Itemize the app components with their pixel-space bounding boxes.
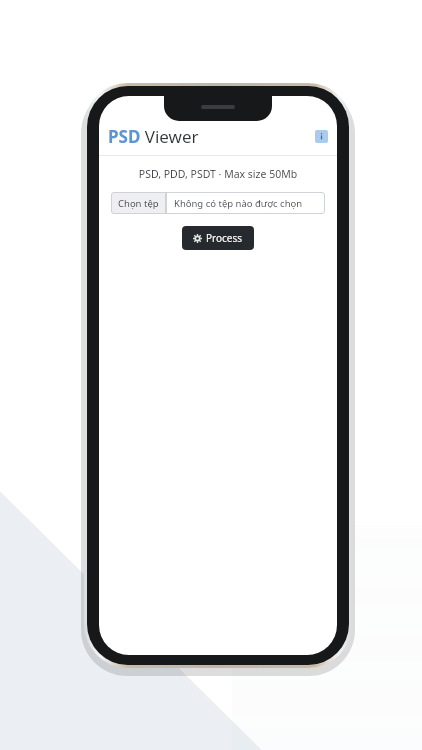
- staticText: Process: [206, 231, 243, 245]
- button[interactable]: Process: [182, 226, 254, 250]
- button[interactable]: Information: [315, 130, 328, 143]
- staticText: Không có tệp nào được chọn: [174, 197, 303, 210]
- staticText: Chọn tệp: [118, 197, 159, 210]
- button[interactable]: Chọn tệp: [111, 192, 166, 214]
- staticText: PSD Viewer: [108, 125, 199, 148]
- button[interactable]: Không có tệp nào được chọn: [166, 192, 325, 214]
- button[interactable]: PSD Viewer: [108, 125, 315, 148]
- staticText: PSD, PDD, PSDT · Max size 50Mb: [99, 167, 337, 181]
